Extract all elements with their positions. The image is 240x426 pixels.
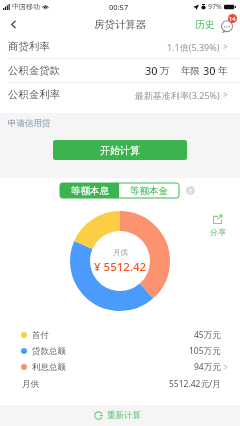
- button[interactable]: 商贷利率: [0, 35, 240, 58]
- staticText: 贷款总额: [32, 346, 66, 357]
- button[interactable]: Messages: [220, 15, 236, 35]
- staticText: 105万元: [189, 345, 221, 357]
- button[interactable]: 公积金利率: [0, 83, 240, 106]
- staticText: 利息总额: [32, 362, 66, 373]
- staticText: 月供: [113, 248, 128, 257]
- button[interactable]: 分享: [207, 214, 228, 237]
- staticText: 万: [160, 65, 170, 77]
- button[interactable]: 重新计算: [92, 408, 143, 423]
- staticText: 00:57: [109, 2, 129, 12]
- staticText: 中国移动: [12, 2, 40, 11]
- button[interactable]: 贷款总额: [21, 343, 221, 359]
- staticText: 开始计算: [100, 144, 140, 157]
- button[interactable]: 利息总额: [21, 359, 221, 375]
- staticText: 年: [218, 65, 228, 77]
- staticText: 年限: [181, 65, 200, 77]
- button[interactable]: 等额本金: [119, 183, 179, 198]
- staticText: 重新计算: [107, 410, 141, 421]
- button[interactable]: 公积金贷款: [0, 59, 240, 82]
- staticText: 等额本金: [130, 185, 168, 197]
- staticText: ?: [189, 187, 192, 195]
- button[interactable]: Help: [186, 186, 195, 195]
- staticText: 等额本息: [71, 185, 109, 197]
- staticText: 97%: [208, 2, 222, 12]
- staticText: 公积金贷款: [8, 64, 60, 77]
- staticText: 45万元: [194, 329, 221, 341]
- button[interactable]: 等额本息: [60, 183, 119, 198]
- staticText: 最新基准利率(3.25%): [135, 89, 220, 101]
- button[interactable]: 历史: [192, 14, 218, 35]
- staticText: 月供: [22, 379, 39, 390]
- staticText: 94万元: [194, 361, 221, 373]
- button[interactable]: 首付: [21, 327, 221, 343]
- button[interactable]: 开始计算: [53, 140, 187, 160]
- staticText: 申请信用贷: [8, 118, 51, 129]
- staticText: 分享: [210, 227, 226, 237]
- staticText: ¥ 5512.42: [94, 259, 147, 275]
- staticText: 首付: [32, 330, 49, 341]
- staticText: 历史: [195, 18, 215, 31]
- staticText: 1.1倍(5.39%): [167, 41, 220, 53]
- staticText: 商贷利率: [8, 40, 50, 53]
- staticText: 30: [145, 63, 158, 78]
- staticText: 14: [229, 15, 236, 22]
- staticText: 房贷计算器: [94, 18, 147, 31]
- button[interactable]: 申请信用贷: [8, 118, 51, 129]
- button[interactable]: Back: [0, 13, 26, 35]
- staticText: 30: [203, 63, 216, 78]
- staticText: 公积金利率: [8, 88, 60, 101]
- staticText: 5512.42元/月: [169, 378, 221, 390]
